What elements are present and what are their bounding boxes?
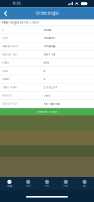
button[interactable]: Paylaş (56, 177, 75, 190)
staticText: Diğer (83, 185, 87, 187)
button[interactable]: Diğer (75, 177, 94, 190)
staticText: Parsel Bilgisi (1, 21, 19, 24)
staticText: Tapu Alanı (2, 86, 17, 89)
button[interactable]: Back (0, 7, 11, 20)
staticText: 10:58 (12, 2, 20, 5)
staticText: İl (2, 28, 4, 31)
staticText: 0 (43, 69, 45, 72)
staticText: Kat Taşınmaz (43, 102, 59, 105)
staticText: Harita (26, 185, 31, 187)
staticText: erik (43, 61, 48, 64)
staticText: Mevkii Listesi (20, 21, 39, 24)
staticText: Parselleri Göster (37, 110, 57, 113)
staticText: Mahalle/Köy (2, 45, 18, 48)
staticText: Bölüm Tip (2, 102, 17, 105)
staticText: Sorgu (7, 185, 12, 187)
staticText: 1997 YB (43, 53, 55, 56)
button[interactable]: Parselleri Göster (0, 108, 94, 115)
button[interactable]: Ada (0, 67, 94, 75)
staticText: Parsel (2, 77, 10, 81)
button[interactable]: Mahalle/Köy (0, 42, 94, 51)
button[interactable]: Pafta (0, 59, 94, 67)
button[interactable]: Nitelik (0, 92, 94, 100)
button[interactable]: Kayıt (38, 177, 56, 190)
staticText: Pınarbaşı (43, 45, 55, 48)
staticText: Bursa (43, 28, 50, 31)
button[interactable]: İl (0, 26, 94, 34)
button[interactable]: Mevkii Listesi (20, 20, 39, 26)
button[interactable]: Harita (19, 177, 38, 190)
staticText: Paylaş (63, 185, 68, 187)
button[interactable]: Parsel Bilgisi (1, 20, 20, 26)
button[interactable]: Parsel (0, 75, 94, 83)
staticText: Mevkii Adı (2, 53, 17, 56)
staticText: İlçe (2, 36, 8, 40)
staticText: Nitelik (2, 94, 11, 97)
button[interactable]: Sorgu (0, 177, 19, 190)
staticText: Tarla (43, 94, 49, 97)
button[interactable]: Tapu Alanı (0, 83, 94, 92)
staticText: Örnek Bilgisi (35, 11, 58, 16)
button[interactable]: İlçe (0, 34, 94, 42)
button[interactable]: Bölüm Tip (0, 100, 94, 108)
staticText: 2.532,57 (43, 86, 57, 89)
staticText: Ada (2, 69, 7, 72)
staticText: Kayıt (45, 185, 49, 187)
button[interactable]: Mevkii Adı (0, 51, 94, 59)
staticText: 4 (43, 77, 45, 81)
staticText: Orhaneli (43, 36, 55, 40)
staticText: Pafta (2, 61, 8, 64)
